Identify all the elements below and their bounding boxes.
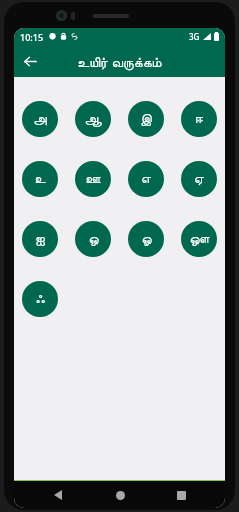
button[interactable]: அ [22,101,58,137]
button[interactable]: ஏ [181,161,217,197]
staticText: உ [34,173,46,186]
staticText: இ [140,113,152,126]
staticText: எ [141,173,151,186]
staticText: ஓ [141,233,152,246]
staticText: ஏ [194,173,204,186]
staticText: 10:15 [20,31,44,43]
staticText: ஒ [88,233,99,246]
button[interactable]: ஔ [181,221,217,257]
staticText: ஐ [35,233,45,246]
staticText: அ [33,113,47,126]
button[interactable]: Back [16,47,44,75]
button[interactable]: எ [128,161,164,197]
button[interactable]: ஃ [22,281,58,317]
staticText: ஔ [189,233,210,246]
staticText: 3G [189,31,200,42]
staticText: ஈ [195,113,203,126]
button[interactable]: Home [103,483,137,507]
button[interactable]: ஐ [22,221,58,257]
button[interactable]: Recent apps [164,483,198,507]
staticText: உயிர் வருக்கம் [77,52,162,71]
button[interactable]: ஊ [75,161,111,197]
button[interactable]: ஒ [75,221,111,257]
button[interactable]: ஆ [75,101,111,137]
button[interactable]: ஈ [181,101,217,137]
staticText: ஆ [84,113,102,126]
button[interactable]: ஓ [128,221,164,257]
button[interactable]: உ [22,161,58,197]
button[interactable]: இ [128,101,164,137]
button[interactable]: Back [41,483,75,507]
staticText: ஊ [85,173,101,186]
staticText: ஃ [35,293,45,306]
